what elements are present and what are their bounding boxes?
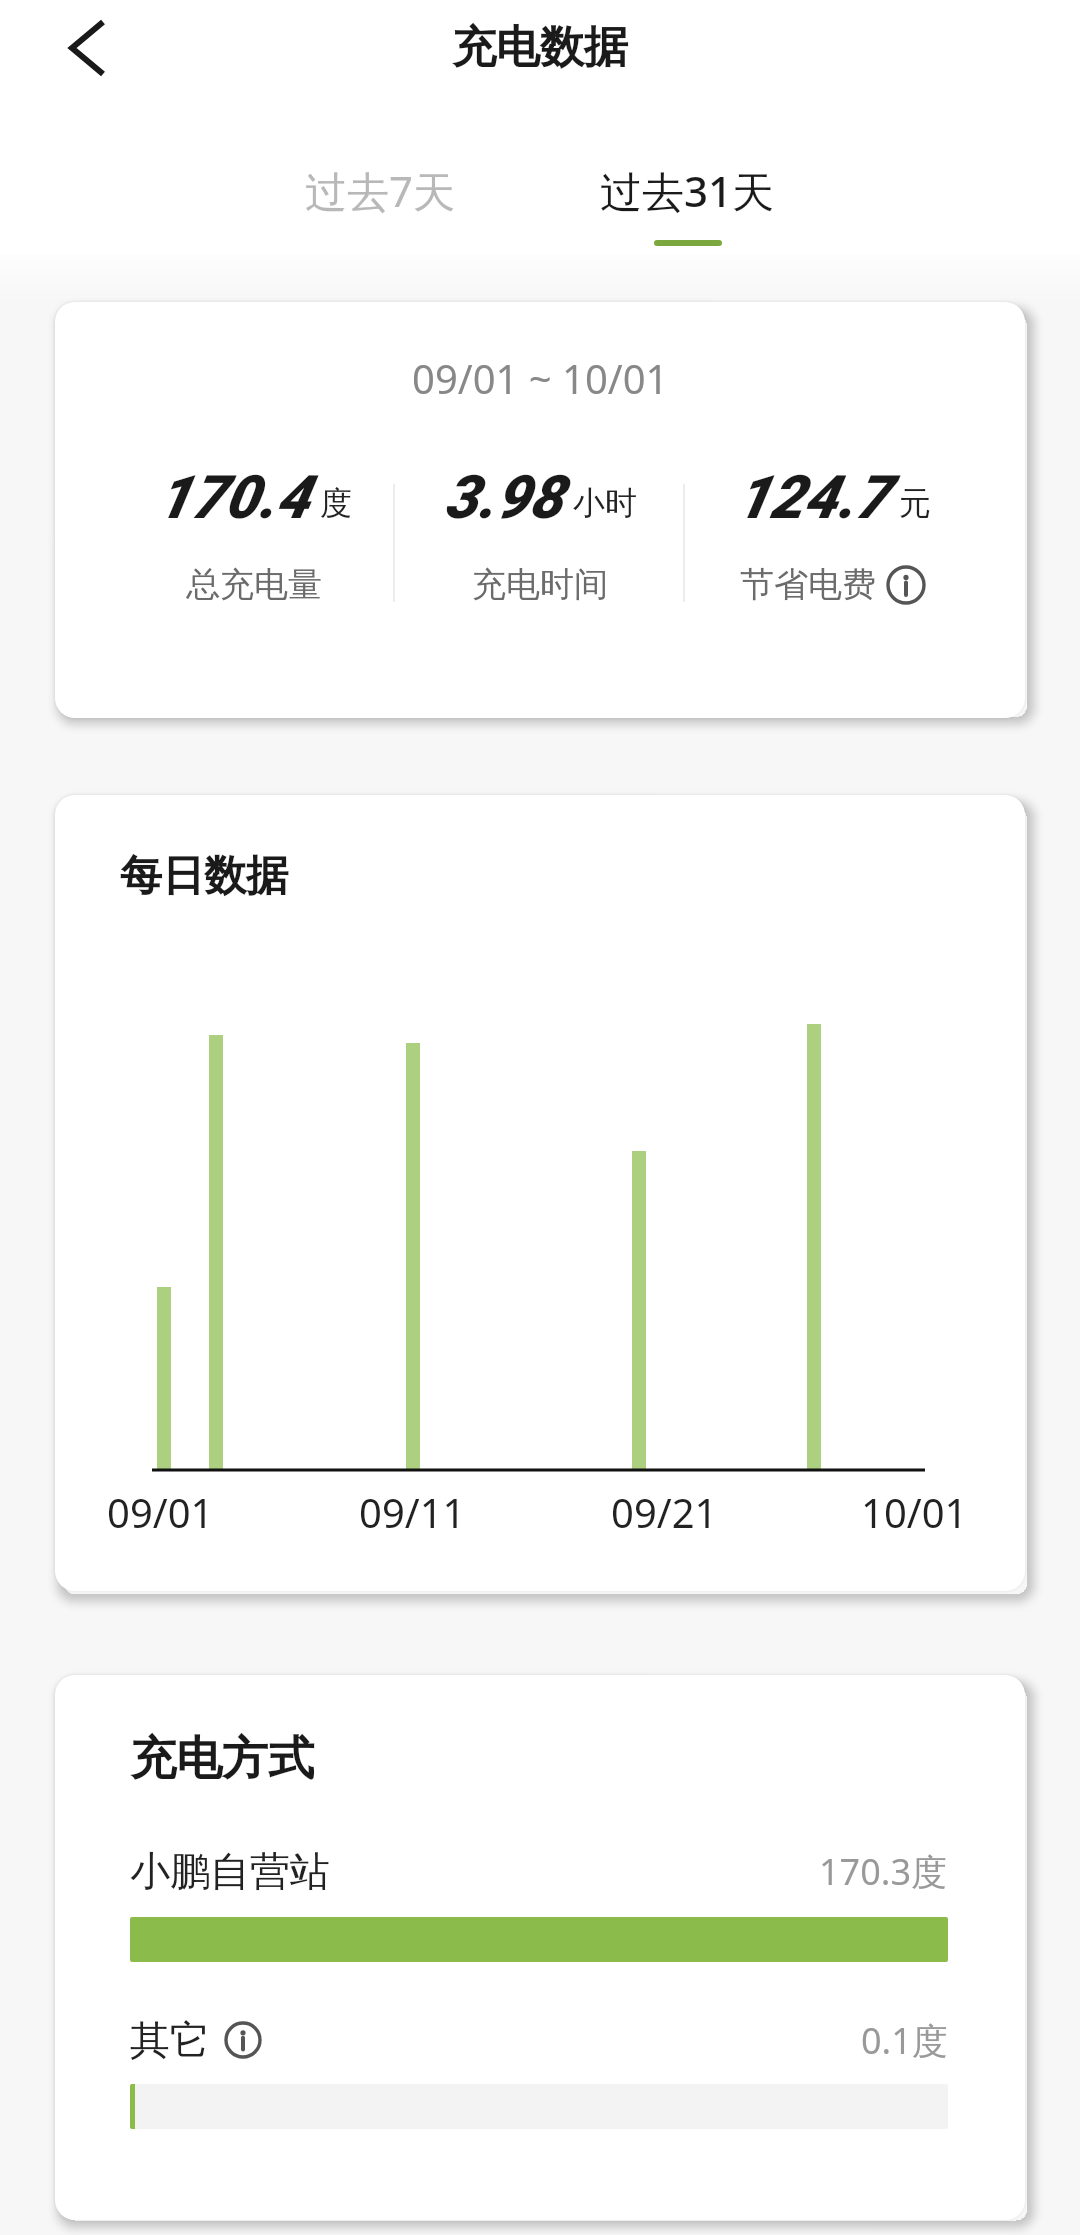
staticText: 小鹏自营站 [130, 1846, 330, 1896]
staticText: 每日数据 [120, 850, 288, 903]
button[interactable] [48, 8, 128, 88]
staticText: 元 [899, 483, 931, 523]
staticText: 充电方式 [130, 1730, 314, 1788]
staticText: 总充电量 [186, 563, 322, 606]
staticText: 170.3度 [819, 1847, 948, 1896]
staticText: 充电时间 [472, 563, 608, 606]
button[interactable]: 过去7天 [280, 140, 480, 240]
staticText: 度 [320, 483, 352, 523]
staticText: 充电数据 [452, 20, 628, 75]
staticText: 0.1度 [861, 2016, 948, 2065]
staticText: 09/21 [611, 1485, 718, 1539]
staticText: 节省电费 [740, 563, 876, 606]
staticText: 10/01 [861, 1485, 968, 1539]
staticText: 过去31天 [600, 162, 775, 219]
staticText: 小时 [573, 483, 637, 523]
staticText: 09/01 ~ 10/01 [412, 351, 669, 405]
staticText: 09/11 [359, 1485, 466, 1539]
staticText: 124.7 [736, 462, 889, 532]
staticText: 3.98 [444, 462, 563, 532]
button[interactable]: 过去31天 [587, 140, 787, 250]
staticText: 过去7天 [305, 162, 456, 219]
staticText: 09/01 [107, 1485, 214, 1539]
staticText: 其它 [130, 2015, 210, 2065]
staticText: 170.4 [157, 462, 310, 532]
